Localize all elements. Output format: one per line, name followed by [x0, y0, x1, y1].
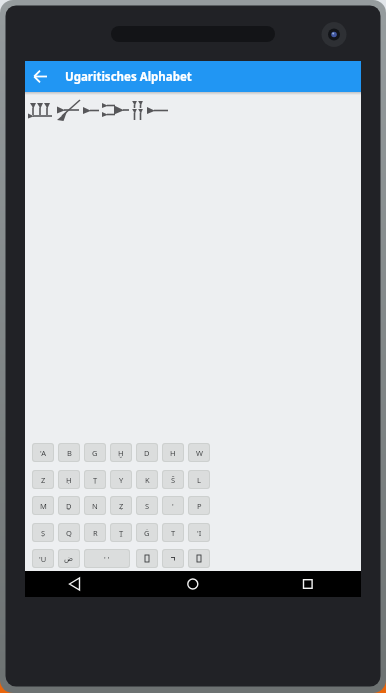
- staticText: Ḥ: [66, 475, 72, 485]
- staticText: Q: [66, 528, 72, 538]
- staticText: Ġ: [144, 528, 150, 538]
- staticText: 'I: [197, 528, 202, 538]
- staticText: T: [171, 528, 176, 538]
- staticText: H: [170, 448, 176, 458]
- staticText: M: [40, 501, 47, 511]
- staticText: W: [196, 448, 203, 458]
- staticText: B: [67, 448, 72, 458]
- staticText: D: [144, 448, 150, 458]
- staticText: 'A: [40, 448, 46, 458]
- staticText: Ḫ: [118, 448, 124, 458]
- staticText: R: [93, 528, 98, 538]
- staticText: Y: [119, 475, 124, 485]
- staticText: Ḏ: [66, 501, 72, 511]
- staticText: N: [92, 501, 98, 511]
- staticText: ض: [64, 554, 74, 563]
- staticText: Ẓ: [119, 501, 124, 511]
- staticText: ': [172, 501, 174, 511]
- staticText: L: [197, 475, 201, 485]
- staticText: Ṭ: [93, 475, 98, 485]
- staticText: 'U: [39, 554, 47, 564]
- staticText: P: [197, 501, 202, 511]
- staticText: Z: [41, 475, 46, 485]
- staticText: K: [145, 475, 150, 485]
- staticText: Ṯ: [119, 528, 124, 538]
- staticText: G: [92, 448, 98, 458]
- staticText: Š: [171, 475, 176, 485]
- staticText: Ugaritisches Alphabet: [65, 69, 192, 85]
- staticText: Ṣ: [41, 528, 46, 538]
- staticText: ' ': [104, 554, 110, 564]
- staticText: S: [145, 501, 150, 511]
